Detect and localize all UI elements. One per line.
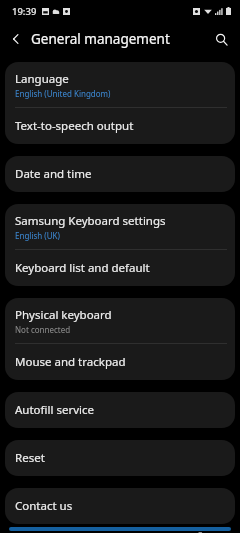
staticText: General management <box>31 30 170 48</box>
button[interactable]: Mouse and trackpad <box>5 344 235 380</box>
staticText: Keyboard list and default <box>15 260 150 276</box>
button[interactable]: Reset <box>5 440 235 476</box>
staticText: Samsung Keyboard settings <box>15 213 166 229</box>
staticText: Mouse and trackpad <box>15 354 126 370</box>
staticText: English (UK) <box>15 230 60 241</box>
button[interactable]: Autofill service <box>5 392 235 428</box>
staticText: Contact us <box>15 498 73 514</box>
button[interactable]: Physical keyboard <box>5 298 235 343</box>
button[interactable]: Search <box>208 26 234 52</box>
button[interactable]: Date and time <box>5 156 235 192</box>
button[interactable]: Back <box>3 26 29 52</box>
button[interactable]: Contact us <box>5 488 235 524</box>
staticText: Language <box>15 71 69 87</box>
staticText: Reset <box>15 450 45 466</box>
staticText: Date and time <box>15 166 92 182</box>
staticText: Text-to-speech output <box>15 118 134 134</box>
staticText: Autofill service <box>15 402 94 418</box>
staticText: Not connected <box>15 324 71 335</box>
staticText: 19:39 <box>12 5 37 18</box>
button[interactable]: Language <box>5 62 235 107</box>
button[interactable]: Text-to-speech output <box>5 108 235 144</box>
button[interactable]: Samsung Keyboard settings <box>5 204 235 249</box>
button[interactable]: Keyboard list and default <box>5 250 235 286</box>
staticText: Physical keyboard <box>15 307 112 323</box>
staticText: English (United Kingdom) <box>15 88 111 99</box>
